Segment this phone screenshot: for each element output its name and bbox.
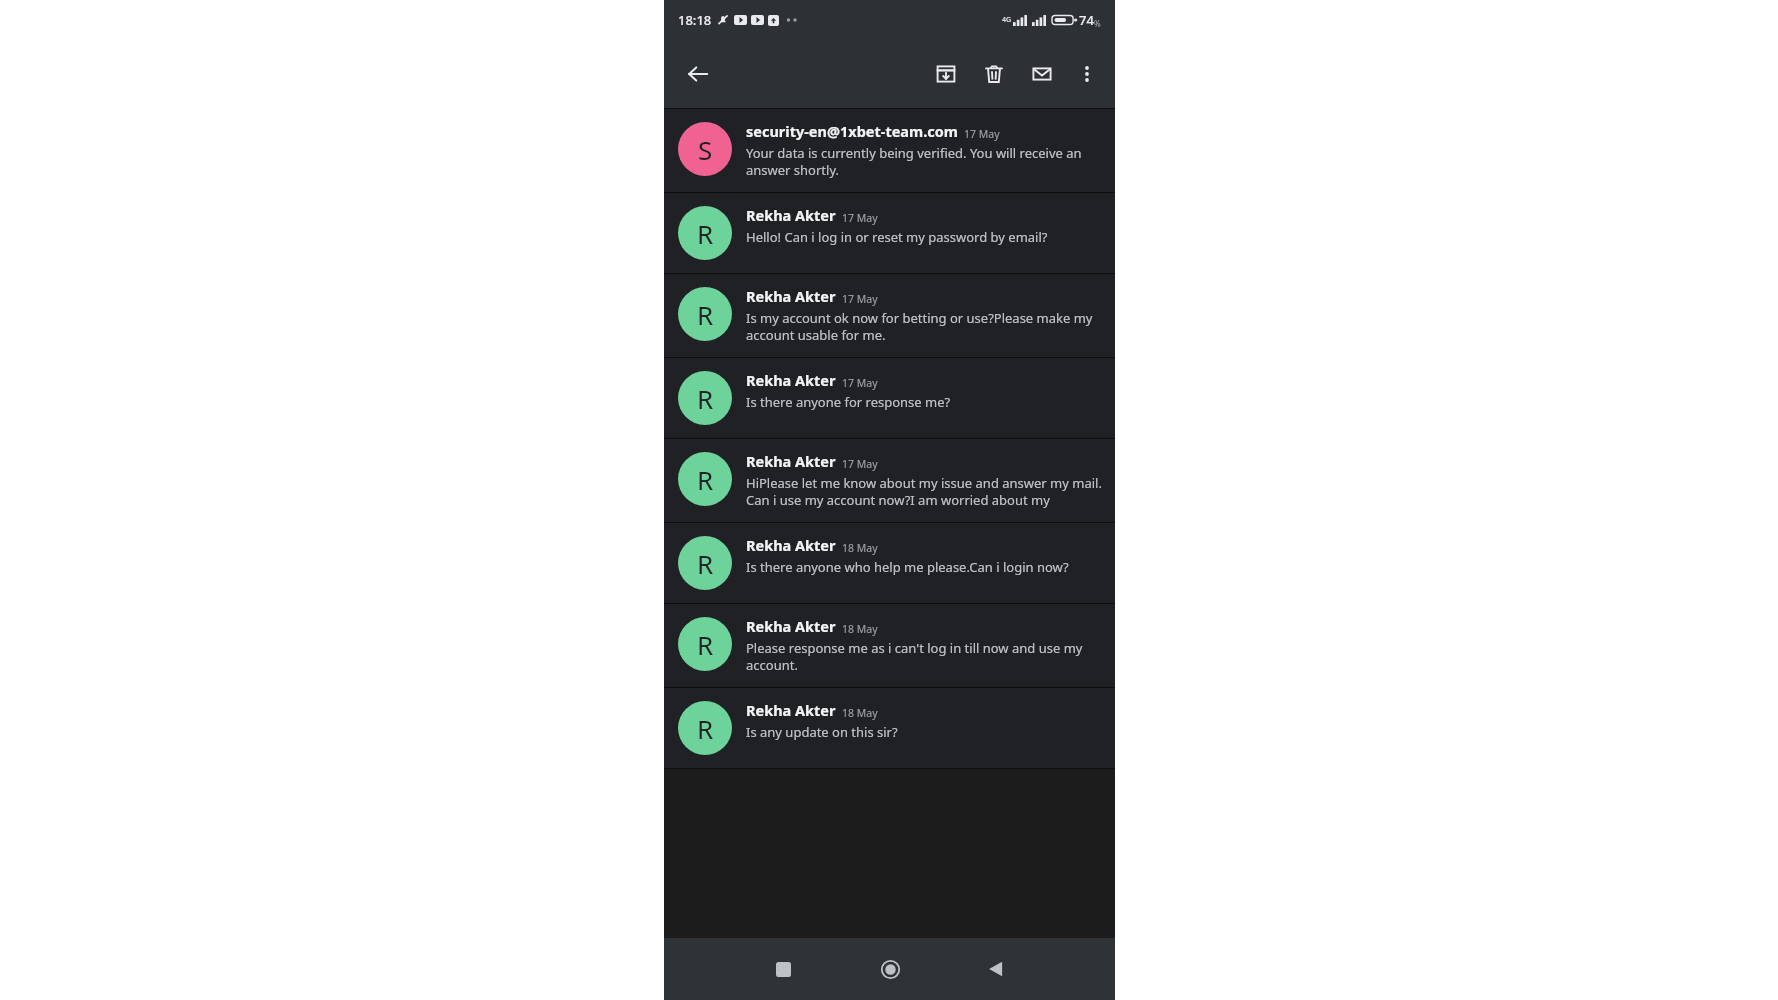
button[interactable]: Delete xyxy=(973,53,1015,95)
staticText: HiPlease let me know about my issue and … xyxy=(746,474,1103,509)
staticText: R xyxy=(697,711,714,746)
staticText: Rekha Akter xyxy=(746,700,836,720)
staticText: 74 xyxy=(1079,11,1094,29)
staticText: Rekha Akter xyxy=(746,286,836,306)
staticText: 18:18 xyxy=(678,11,712,29)
staticText: R xyxy=(697,216,714,251)
staticText: Rekha Akter xyxy=(746,205,836,225)
staticText: Hello! Can i log in or reset my password… xyxy=(746,228,1048,246)
staticText: Rekha Akter xyxy=(746,370,836,390)
staticText: Is there anyone who help me please.Can i… xyxy=(746,558,1069,576)
button[interactable]: Back xyxy=(676,52,720,96)
staticText: 17 May xyxy=(842,457,878,471)
button[interactable]: Archive xyxy=(925,53,967,95)
staticText: 18 May xyxy=(842,706,878,720)
staticText: security-en@1xbet-team.com xyxy=(746,121,958,141)
button[interactable]: R xyxy=(664,274,1115,357)
staticText: Rekha Akter xyxy=(746,535,836,555)
staticText: R xyxy=(697,381,714,416)
staticText: Please response me as i can't log in til… xyxy=(746,639,1103,674)
staticText: 18 May xyxy=(842,541,878,555)
staticText: 17 May xyxy=(842,211,878,225)
staticText: R xyxy=(697,546,714,581)
staticText: S xyxy=(698,132,713,167)
button[interactable]: R xyxy=(664,358,1115,438)
staticText: Is my account ok now for betting or use?… xyxy=(746,309,1103,344)
staticText: 17 May xyxy=(964,127,1000,141)
staticText: 4G xyxy=(1002,15,1012,25)
staticText: Is there anyone for response me? xyxy=(746,393,951,411)
staticText: R xyxy=(697,462,714,497)
staticText: 18 May xyxy=(842,622,878,636)
staticText: Rekha Akter xyxy=(746,451,836,471)
button[interactable]: R xyxy=(664,604,1115,687)
button[interactable]: Back xyxy=(974,947,1018,991)
button[interactable]: R xyxy=(664,523,1115,603)
button[interactable]: R xyxy=(664,439,1115,522)
staticText: Rekha Akter xyxy=(746,616,836,636)
button[interactable]: Mark as unread xyxy=(1021,53,1063,95)
button[interactable]: R xyxy=(664,688,1115,768)
staticText: 17 May xyxy=(842,376,878,390)
staticText: 17 May xyxy=(842,292,878,306)
button[interactable]: Home xyxy=(868,947,912,991)
button[interactable]: More options xyxy=(1067,54,1107,94)
staticText: % xyxy=(1094,18,1101,29)
button[interactable]: R xyxy=(664,193,1115,273)
staticText: R xyxy=(697,297,714,332)
staticText: R xyxy=(697,627,714,662)
button[interactable]: Recent apps xyxy=(761,947,805,991)
staticText: Is any update on this sir? xyxy=(746,723,898,741)
button[interactable]: S xyxy=(664,109,1115,192)
staticText: Your data is currently being verified. Y… xyxy=(746,144,1103,179)
